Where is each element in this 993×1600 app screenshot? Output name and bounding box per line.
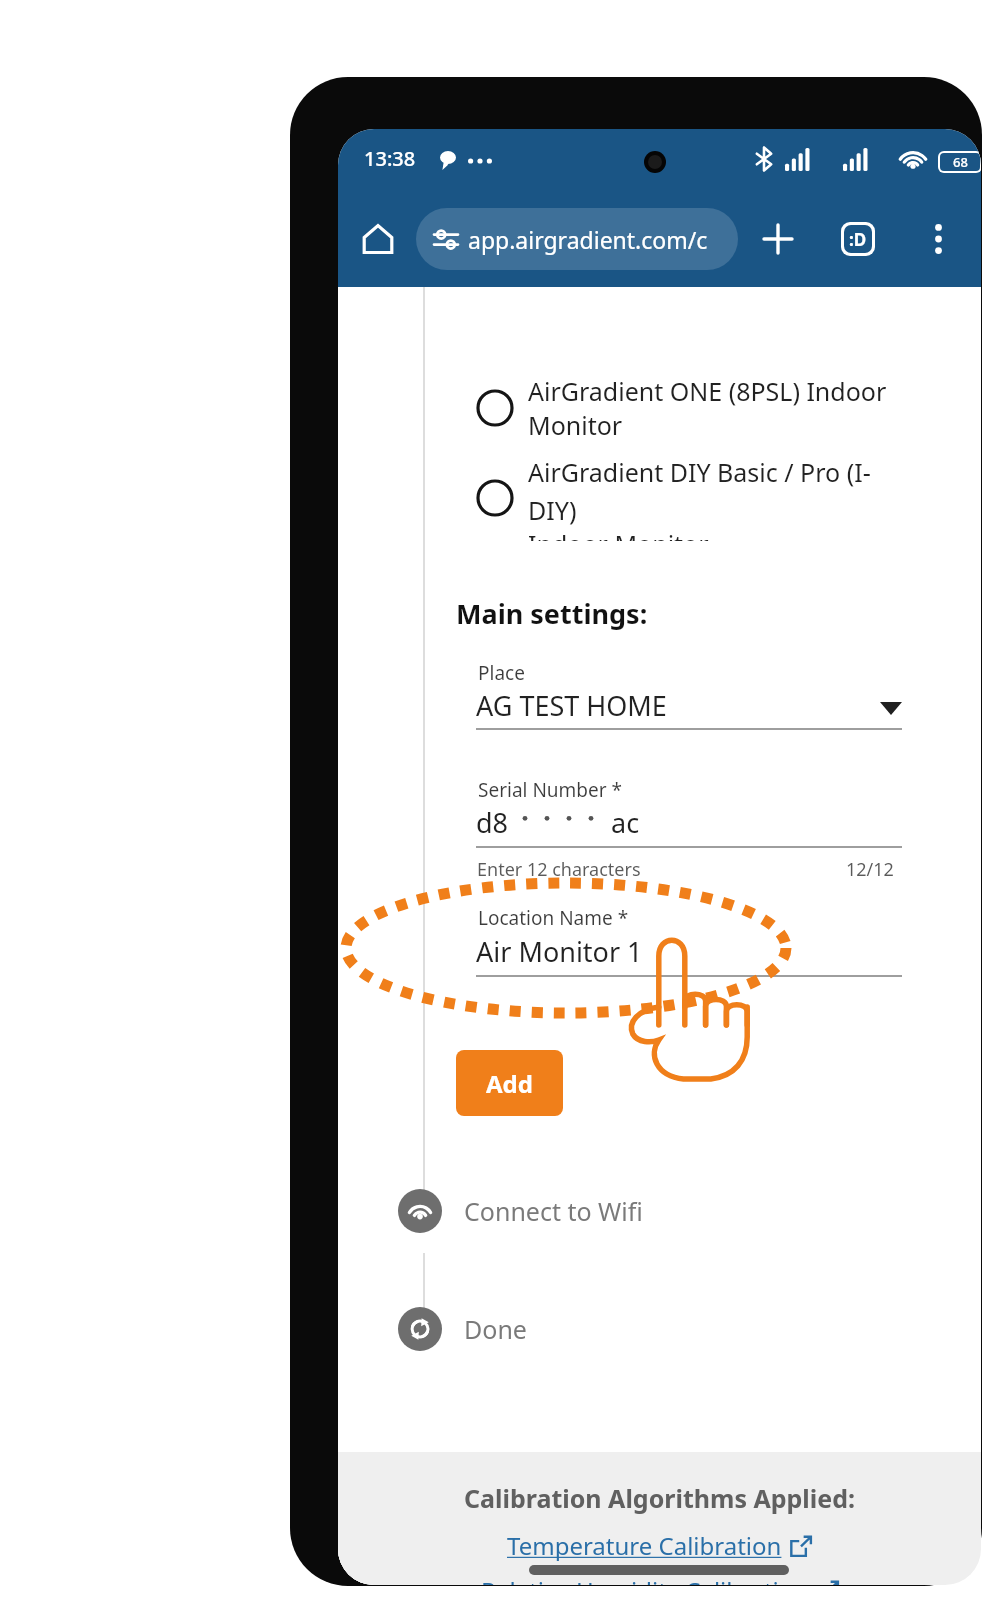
staticText: AG TEST HOME bbox=[476, 687, 667, 724]
staticText: Indoor Monitor bbox=[528, 527, 709, 541]
button[interactable]: app.airgradient.com/c bbox=[416, 208, 738, 270]
button[interactable]: Done bbox=[398, 1303, 818, 1355]
staticText: Serial Number * bbox=[478, 777, 623, 803]
button[interactable]: More options bbox=[910, 211, 966, 267]
staticText: Relative Humidity Calibration bbox=[481, 1574, 809, 1585]
button[interactable]: New tab bbox=[750, 211, 806, 267]
staticText: d8 bbox=[476, 804, 509, 841]
staticText: Done bbox=[464, 1312, 527, 1346]
staticText: app.airgradient.com/c bbox=[468, 224, 708, 255]
button[interactable]: Connect to Wifi bbox=[398, 1185, 818, 1237]
staticText: Monitor bbox=[528, 408, 623, 442]
staticText: Air Monitor 1 bbox=[476, 933, 643, 970]
staticText: Add bbox=[486, 1067, 533, 1100]
staticText: 68 bbox=[953, 153, 968, 171]
staticText: Enter 12 characters bbox=[477, 857, 641, 882]
button[interactable]: Tabs bbox=[830, 211, 886, 267]
button[interactable]: AirGradient ONE (8PSL) Indoor bbox=[476, 365, 896, 451]
staticText: Calibration Algorithms Applied: bbox=[338, 1481, 981, 1515]
staticText: :D bbox=[849, 228, 867, 251]
staticText: Place bbox=[478, 660, 525, 686]
staticText: Location Name * bbox=[478, 905, 629, 931]
staticText: 12/12 bbox=[846, 857, 894, 882]
button[interactable]: Add bbox=[456, 1050, 563, 1116]
button[interactable]: d8 bbox=[476, 799, 901, 845]
button[interactable]: AirGradient DIY Basic / Pro (I-DIY) bbox=[476, 455, 896, 541]
staticText: 13:38 bbox=[364, 145, 416, 172]
staticText: AirGradient DIY Basic / Pro (I-DIY) bbox=[528, 455, 896, 527]
staticText: Connect to Wifi bbox=[464, 1194, 643, 1228]
staticText: Main settings: bbox=[456, 595, 648, 632]
staticText: AirGradient ONE (8PSL) Indoor bbox=[528, 374, 887, 408]
button[interactable]: Temperature Calibration bbox=[338, 1529, 981, 1562]
button[interactable]: AG TEST HOME bbox=[476, 681, 901, 729]
button[interactable]: Relative Humidity Calibration bbox=[338, 1574, 981, 1585]
staticText: ac bbox=[611, 804, 640, 841]
staticText: Temperature Calibration bbox=[507, 1529, 782, 1562]
button[interactable]: Air Monitor 1 bbox=[476, 927, 901, 975]
button[interactable]: Home bbox=[350, 211, 406, 267]
